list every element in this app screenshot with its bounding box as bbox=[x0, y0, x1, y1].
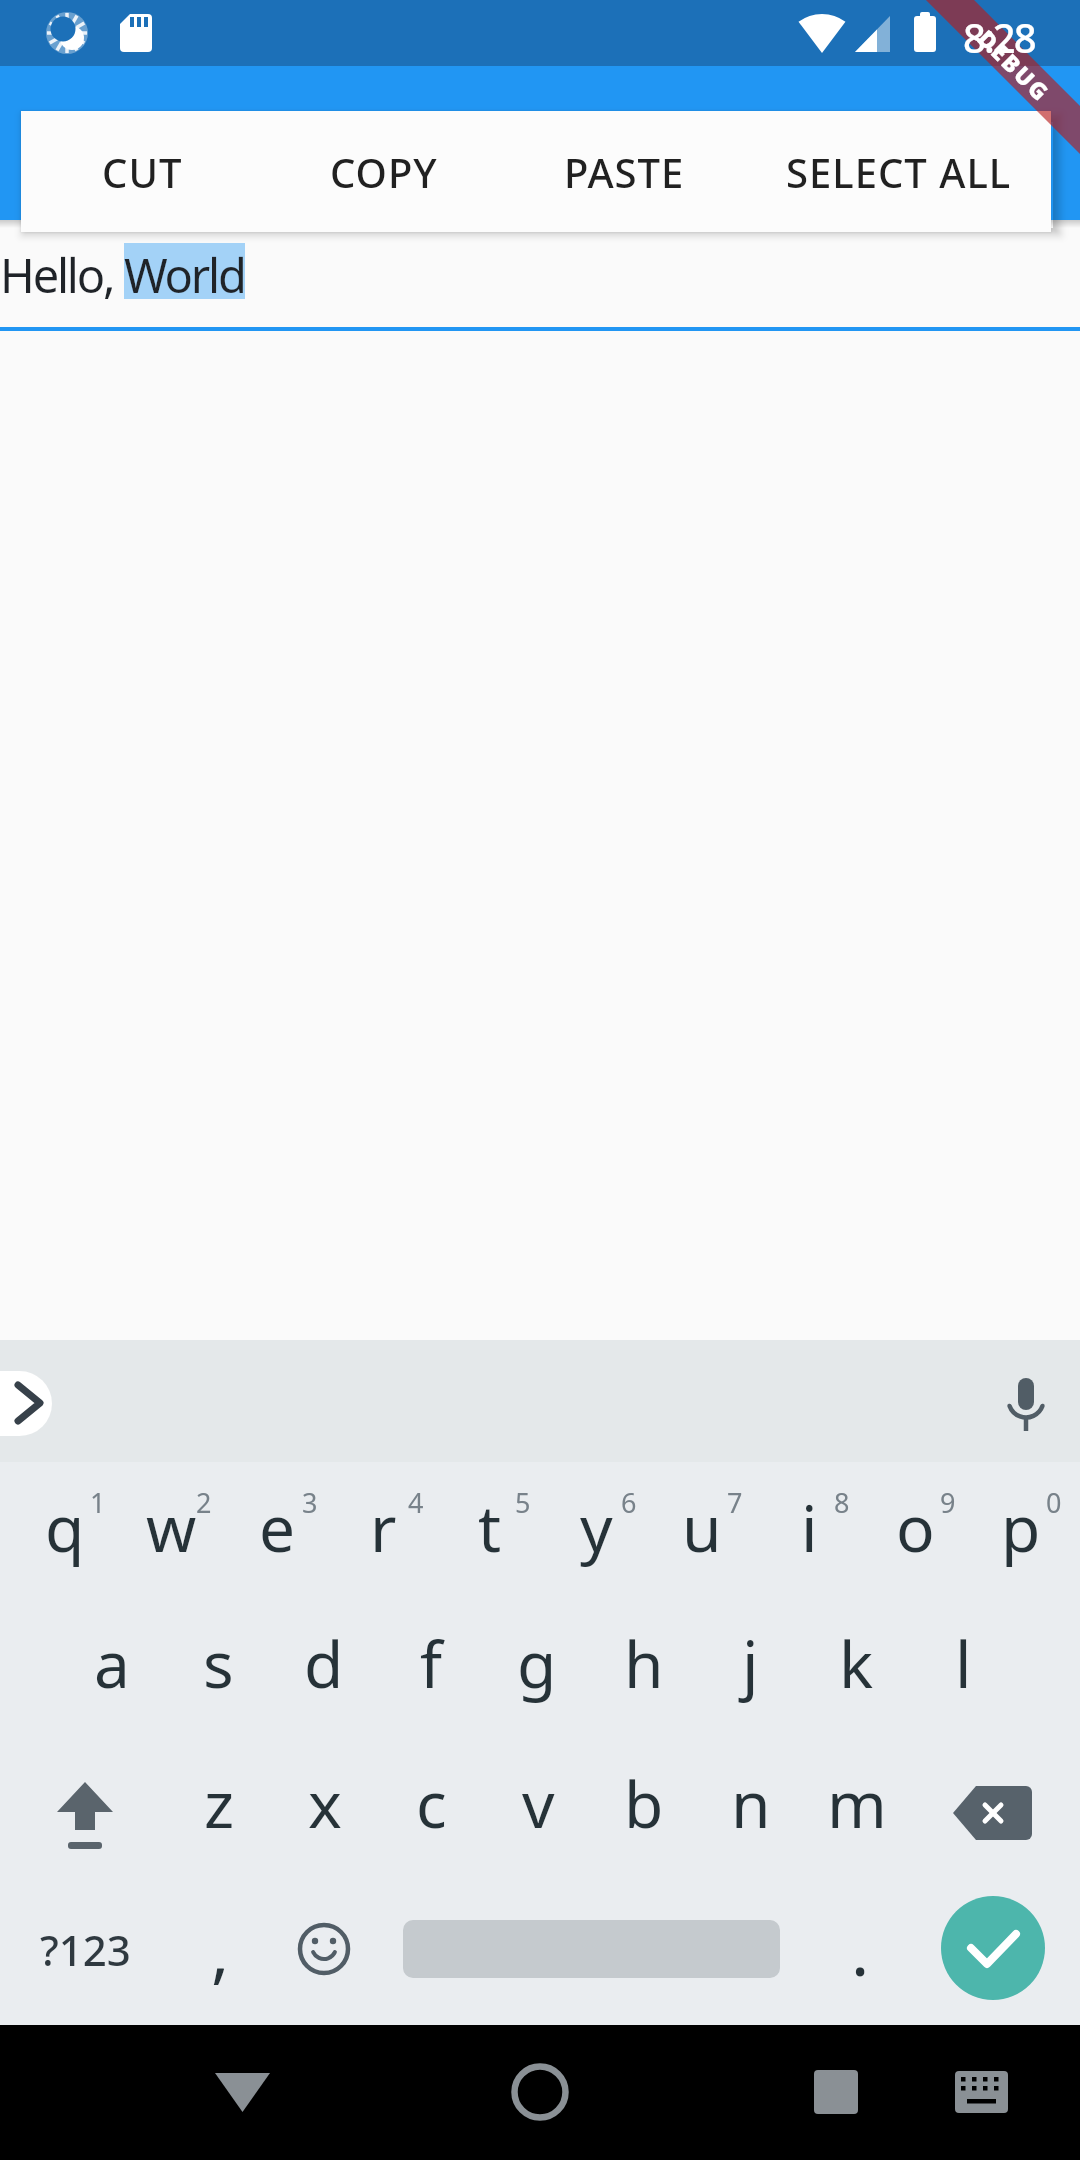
staticText: g bbox=[517, 1620, 557, 1707]
staticText: COPY bbox=[330, 145, 438, 199]
button[interactable]: t bbox=[437, 1462, 543, 1592]
button[interactable]: q bbox=[12, 1462, 118, 1592]
button[interactable] bbox=[0, 1371, 52, 1436]
button[interactable]: c bbox=[378, 1738, 484, 1868]
button[interactable] bbox=[776, 2032, 896, 2152]
button[interactable]: , bbox=[155, 1884, 285, 2014]
staticText: DEBUG bbox=[972, 23, 1057, 108]
staticText: z bbox=[204, 1760, 235, 1847]
staticText: SELECT ALL bbox=[786, 145, 1012, 199]
staticText: h bbox=[624, 1620, 664, 1707]
staticText: m bbox=[827, 1760, 887, 1847]
staticText: 3 bbox=[302, 1484, 318, 1521]
button[interactable]: g bbox=[484, 1598, 590, 1728]
staticText: e bbox=[259, 1484, 296, 1571]
button[interactable]: z bbox=[166, 1738, 272, 1868]
button[interactable]: . bbox=[795, 1884, 925, 2014]
staticText: j bbox=[742, 1620, 759, 1707]
button[interactable] bbox=[182, 2032, 302, 2152]
staticText: 9 bbox=[940, 1484, 956, 1521]
button[interactable]: w bbox=[118, 1462, 224, 1592]
staticText: l bbox=[955, 1620, 972, 1707]
staticText: u bbox=[682, 1484, 722, 1571]
staticText: 1 bbox=[90, 1484, 106, 1521]
staticText: d bbox=[304, 1620, 344, 1707]
button[interactable]: i bbox=[756, 1462, 862, 1592]
staticText: i bbox=[801, 1484, 818, 1571]
staticText: 2 bbox=[196, 1484, 212, 1521]
button[interactable]: n bbox=[698, 1738, 804, 1868]
staticText: q bbox=[45, 1484, 85, 1571]
staticText: x bbox=[308, 1760, 342, 1847]
button[interactable] bbox=[921, 2032, 1041, 2152]
staticText: s bbox=[203, 1620, 234, 1707]
button[interactable]: ?123 bbox=[20, 1884, 150, 2014]
staticText: v bbox=[522, 1760, 555, 1847]
staticText: 7 bbox=[727, 1484, 743, 1521]
staticText: p bbox=[1001, 1484, 1041, 1571]
button[interactable]: x bbox=[272, 1738, 378, 1868]
staticText: o bbox=[896, 1484, 935, 1571]
button[interactable] bbox=[941, 1896, 1045, 2000]
staticText: 0 bbox=[1046, 1484, 1062, 1521]
button[interactable]: j bbox=[697, 1598, 803, 1728]
staticText: 8 bbox=[834, 1484, 850, 1521]
button[interactable]: y bbox=[543, 1462, 649, 1592]
staticText: 5 bbox=[515, 1484, 531, 1521]
button[interactable]: CUT bbox=[62, 111, 222, 232]
staticText: Hello, bbox=[0, 243, 124, 299]
button[interactable]: r bbox=[330, 1462, 436, 1592]
button[interactable]: m bbox=[804, 1738, 910, 1868]
staticText: , bbox=[211, 1903, 230, 1996]
button[interactable] bbox=[20, 1747, 150, 1877]
staticText: 6 bbox=[621, 1484, 637, 1521]
button[interactable]: SELECT ALL bbox=[779, 111, 1019, 232]
staticText: w bbox=[146, 1484, 197, 1571]
staticText: c bbox=[416, 1760, 447, 1847]
staticText: 4 bbox=[408, 1484, 424, 1521]
staticText: 8:28 bbox=[963, 10, 1035, 56]
button[interactable]: s bbox=[165, 1598, 271, 1728]
staticText: CUT bbox=[102, 145, 183, 199]
staticText: y bbox=[580, 1484, 613, 1571]
button[interactable] bbox=[928, 1747, 1058, 1877]
staticText: PASTE bbox=[564, 145, 685, 199]
staticText: . bbox=[851, 1903, 870, 1996]
staticText: b bbox=[624, 1760, 664, 1847]
button[interactable]: PASTE bbox=[544, 111, 704, 232]
button[interactable]: h bbox=[591, 1598, 697, 1728]
staticText: World bbox=[124, 243, 245, 299]
button[interactable]: f bbox=[378, 1598, 484, 1728]
button[interactable]: COPY bbox=[304, 111, 464, 232]
staticText: a bbox=[94, 1620, 130, 1707]
button[interactable]: a bbox=[59, 1598, 165, 1728]
staticText: k bbox=[839, 1620, 874, 1707]
button[interactable]: l bbox=[910, 1598, 1016, 1728]
button[interactable]: b bbox=[591, 1738, 697, 1868]
staticText: n bbox=[731, 1760, 771, 1847]
button[interactable]: d bbox=[271, 1598, 377, 1728]
button[interactable]: u bbox=[649, 1462, 755, 1592]
button[interactable]: p bbox=[968, 1462, 1074, 1592]
button[interactable] bbox=[480, 2032, 600, 2152]
staticText: t bbox=[478, 1484, 502, 1571]
button[interactable]: e bbox=[224, 1462, 330, 1592]
button[interactable]: v bbox=[485, 1738, 591, 1868]
staticText: f bbox=[420, 1620, 443, 1707]
button[interactable] bbox=[259, 1884, 389, 2014]
staticText: ?123 bbox=[40, 1921, 131, 1978]
button[interactable]: o bbox=[862, 1462, 968, 1592]
staticText: r bbox=[370, 1484, 397, 1571]
button[interactable]: k bbox=[803, 1598, 909, 1728]
